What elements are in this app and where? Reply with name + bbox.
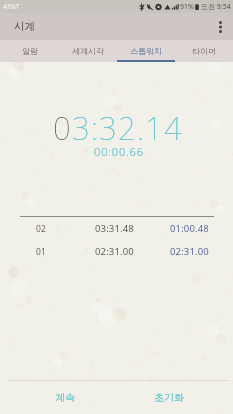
staticText: AT&T (3, 2, 20, 12)
staticText: 03:32.14 (53, 107, 184, 149)
staticText: 02:31.00 (170, 245, 209, 258)
staticText: 91% (180, 2, 194, 12)
staticText: 01 (36, 246, 47, 258)
staticText: 02 (36, 223, 47, 235)
staticText: 스톱워치 (130, 46, 162, 56)
button[interactable]: 계속 (0, 381, 116, 414)
staticText: 세계시각 (72, 46, 104, 56)
button[interactable]: 01 (0, 240, 233, 263)
button[interactable]: 타이머 (175, 40, 233, 62)
staticText: 03:31.48 (95, 222, 134, 235)
staticText: 계속 (55, 391, 75, 404)
button[interactable]: 02 (0, 217, 233, 240)
button[interactable]: 스톱워치 (117, 40, 175, 62)
staticText: 00:00.66 (94, 144, 144, 159)
staticText: 02:31.00 (95, 245, 134, 258)
button[interactable]: 초기화 (116, 381, 233, 414)
staticText: 시계 (14, 20, 35, 33)
staticText: 알람 (22, 46, 38, 56)
staticText: 타이머 (192, 46, 216, 56)
staticText: 초기화 (154, 391, 184, 404)
button[interactable]: 세계시각 (59, 40, 117, 62)
button[interactable]: 알람 (0, 40, 59, 62)
staticText: 01:00.48 (170, 222, 209, 235)
staticText: 오전 9:54 (201, 2, 231, 12)
button[interactable]: More options (207, 13, 233, 40)
